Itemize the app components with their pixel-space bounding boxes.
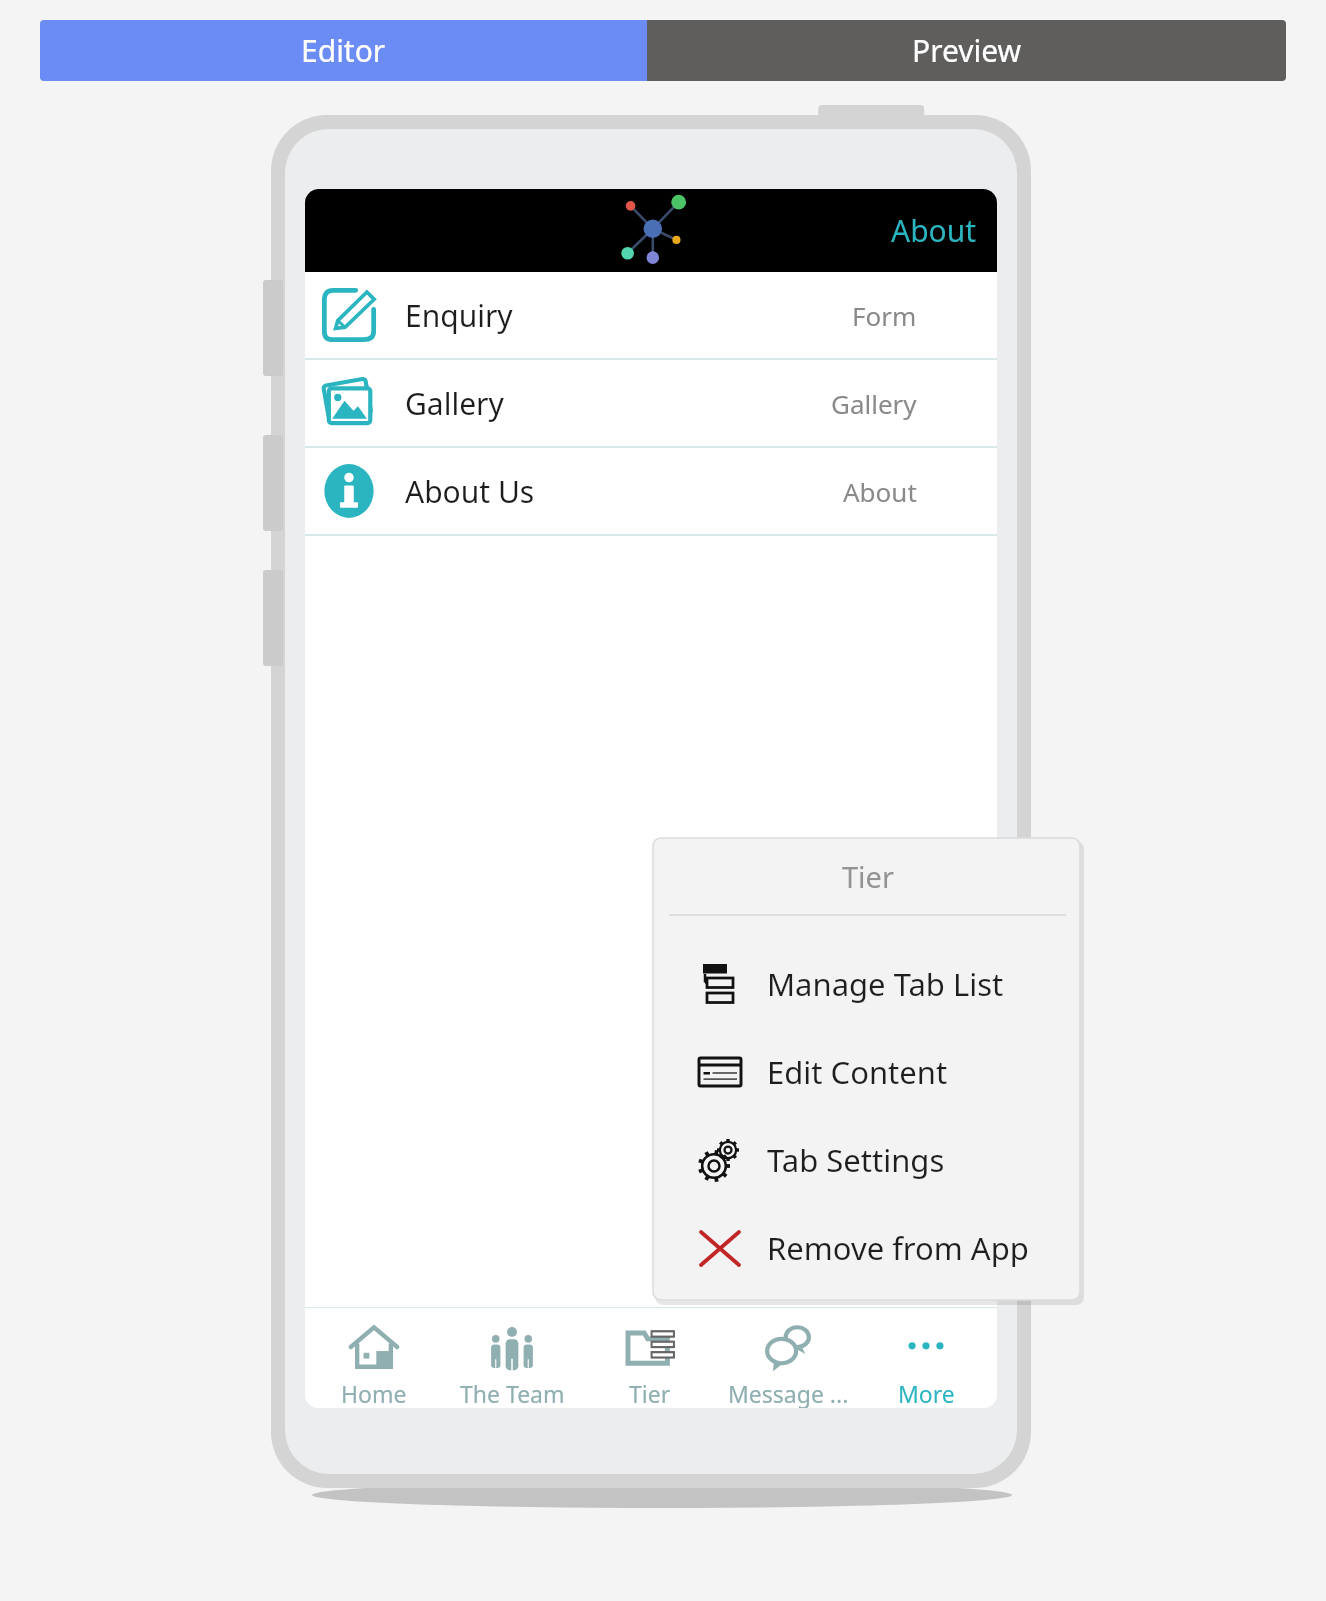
button[interactable]: Enquiry	[305, 272, 997, 358]
button[interactable]: Remove from App	[653, 1204, 1082, 1292]
button[interactable]: Manage Tab List	[653, 940, 1082, 1028]
button[interactable]: Home	[305, 1308, 443, 1408]
staticText: Enquiry	[405, 295, 513, 336]
button[interactable]: App logo	[618, 194, 692, 268]
staticText: About	[843, 474, 917, 509]
staticText: The Team	[460, 1378, 565, 1408]
staticText: Edit Content	[767, 1051, 948, 1093]
button[interactable]: Message ...	[719, 1308, 857, 1408]
button[interactable]: About	[885, 204, 983, 257]
button[interactable]: Tier	[581, 1308, 719, 1408]
staticText: About Us	[405, 471, 535, 512]
button[interactable]: Gallery	[305, 360, 997, 446]
button[interactable]: More	[857, 1308, 995, 1408]
staticText: Editor	[301, 30, 386, 71]
staticText: About	[891, 210, 977, 251]
button[interactable]: Edit Content	[653, 1028, 1082, 1116]
button[interactable]: Editor	[40, 20, 647, 81]
button[interactable]: The Team	[443, 1308, 581, 1408]
staticText: Gallery	[405, 383, 504, 424]
staticText: Tab Settings	[767, 1139, 945, 1181]
staticText: Preview	[912, 30, 1022, 71]
staticText: Message ...	[728, 1378, 849, 1408]
staticText: Manage Tab List	[767, 963, 1004, 1005]
button[interactable]: About Us	[305, 448, 997, 534]
button[interactable]: Tab Settings	[653, 1116, 1082, 1204]
staticText: Tier	[629, 1378, 671, 1408]
staticText: Home	[341, 1378, 407, 1408]
staticText: More	[898, 1378, 955, 1408]
staticText: Remove from App	[767, 1227, 1029, 1269]
staticText: Tier	[842, 857, 894, 896]
button[interactable]: Preview	[647, 20, 1286, 81]
staticText: Form	[852, 298, 917, 333]
staticText: Gallery	[831, 386, 917, 421]
